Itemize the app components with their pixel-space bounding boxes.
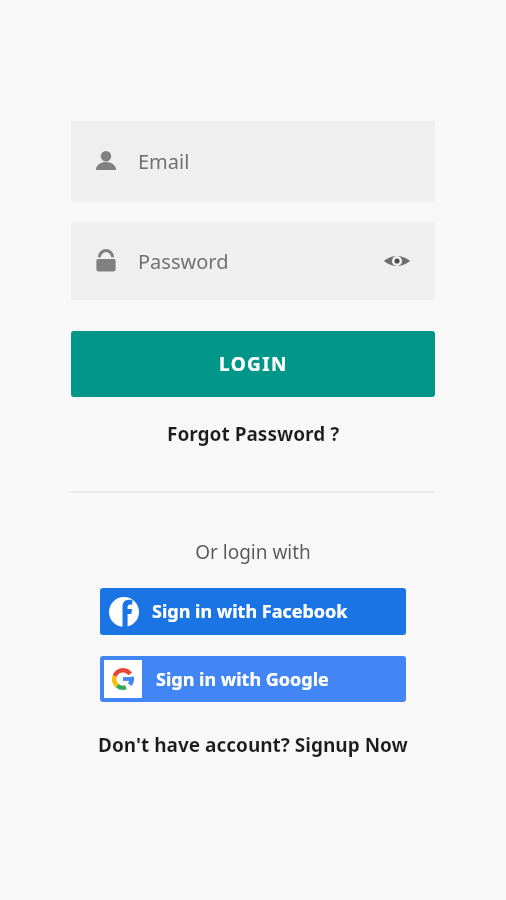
button[interactable]: Password <box>71 222 435 300</box>
button[interactable]: Sign in with Google <box>100 656 406 702</box>
button[interactable]: LOGIN <box>71 331 435 397</box>
staticText: LOGIN <box>219 351 288 377</box>
staticText: Email <box>138 148 190 175</box>
staticText: Forgot Password ? <box>167 421 340 447</box>
staticText: Don't have account? Signup Now <box>98 732 408 758</box>
button[interactable]: Don't have account? Signup Now <box>92 729 414 761</box>
button[interactable]: Email <box>71 121 435 202</box>
button[interactable]: Sign in with Facebook <box>100 588 406 635</box>
staticText: Or login with <box>71 539 435 565</box>
staticText: Sign in with Facebook <box>152 599 348 624</box>
staticText: Sign in with Google <box>156 667 329 692</box>
button[interactable]: Show password <box>377 241 417 281</box>
button[interactable]: Forgot Password ? <box>161 418 346 450</box>
staticText: Password <box>138 248 377 275</box>
